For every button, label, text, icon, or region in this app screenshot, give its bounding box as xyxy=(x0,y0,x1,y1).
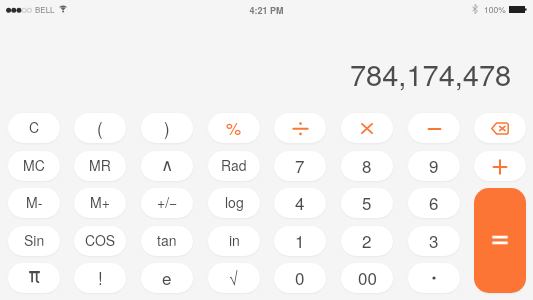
button[interactable]: Plus xyxy=(474,151,526,181)
staticText: e xyxy=(162,265,172,289)
staticText: 7 xyxy=(295,153,305,177)
staticText: tan xyxy=(157,230,177,250)
button[interactable]: in xyxy=(208,226,260,256)
button[interactable]: Delete xyxy=(474,113,526,143)
button[interactable]: M+ xyxy=(74,188,126,218)
staticText: 3 xyxy=(429,228,439,252)
button[interactable]: ! xyxy=(74,263,126,293)
button[interactable]: 1 xyxy=(274,226,326,256)
button[interactable]: √ xyxy=(208,263,260,293)
button[interactable]: MR xyxy=(74,151,126,181)
staticText: 5 xyxy=(362,190,372,214)
button[interactable]: 7 xyxy=(274,151,326,181)
staticText: 1 xyxy=(295,228,305,252)
button[interactable]: +/− xyxy=(141,188,193,218)
button[interactable]: 5 xyxy=(341,188,393,218)
button[interactable]: ∧ xyxy=(141,151,193,181)
staticText: ! xyxy=(98,265,103,289)
button[interactable]: Sin xyxy=(8,226,60,256)
staticText: M+ xyxy=(90,192,110,212)
button[interactable]: ) xyxy=(141,113,193,143)
other: Minus xyxy=(428,127,441,131)
button[interactable]: 6 xyxy=(408,188,460,218)
staticText: ) xyxy=(164,115,170,139)
staticText: in xyxy=(229,230,240,250)
button[interactable]: Rad xyxy=(208,151,260,181)
staticText: 784,174,478 xyxy=(350,53,512,95)
button[interactable]: 00 xyxy=(341,263,393,293)
button[interactable]: Divide xyxy=(274,113,326,143)
button[interactable]: tan xyxy=(141,226,193,256)
button[interactable]: M- xyxy=(8,188,60,218)
button[interactable]: % xyxy=(208,113,260,143)
button[interactable]: Equals xyxy=(474,188,526,293)
staticText: M- xyxy=(26,192,43,212)
other: Decimal point xyxy=(431,275,437,281)
staticText: log xyxy=(225,192,244,212)
staticText: % xyxy=(226,115,242,139)
button[interactable]: 8 xyxy=(341,151,393,181)
staticText: ( xyxy=(97,115,103,139)
staticText: ∧ xyxy=(161,155,174,175)
button[interactable]: ( xyxy=(74,113,126,143)
other: Divide xyxy=(293,122,308,135)
staticText: MR xyxy=(89,155,111,175)
staticText: C xyxy=(29,117,40,137)
staticText: 100% xyxy=(484,3,506,15)
button[interactable]: 3 xyxy=(408,226,460,256)
button[interactable]: 0 xyxy=(274,263,326,293)
staticText: 00 xyxy=(358,265,377,289)
button[interactable]: e xyxy=(141,263,193,293)
button[interactable]: COS xyxy=(74,226,126,256)
staticText: BELL xyxy=(35,4,55,15)
button[interactable]: 2 xyxy=(341,226,393,256)
other: Delete xyxy=(491,122,509,135)
other: Plus xyxy=(493,160,507,174)
staticText: 4 xyxy=(295,190,305,214)
staticText: 2 xyxy=(362,228,372,252)
staticText: Sin xyxy=(24,230,45,250)
staticText: Rad xyxy=(221,155,247,175)
button[interactable]: Decimal point xyxy=(408,263,460,293)
staticText: 0 xyxy=(295,265,305,289)
button[interactable]: Multiply xyxy=(341,113,393,143)
staticText: 9 xyxy=(429,153,439,177)
staticText: MC xyxy=(23,155,45,175)
button[interactable]: Minus xyxy=(408,113,460,143)
button[interactable]: 4 xyxy=(274,188,326,218)
button[interactable]: 9 xyxy=(408,151,460,181)
staticText: √ xyxy=(229,265,239,289)
button[interactable] xyxy=(8,263,60,293)
other: Multiply xyxy=(361,123,373,134)
staticText: COS xyxy=(85,230,116,250)
staticText: 4:21 PM xyxy=(0,4,533,17)
button[interactable]: C xyxy=(8,113,60,143)
button[interactable]: MC xyxy=(8,151,60,181)
staticText: 8 xyxy=(362,153,372,177)
staticText: 6 xyxy=(429,190,439,214)
button[interactable]: log xyxy=(208,188,260,218)
other: Bluetooth xyxy=(472,4,478,14)
staticText: +/− xyxy=(157,192,178,212)
